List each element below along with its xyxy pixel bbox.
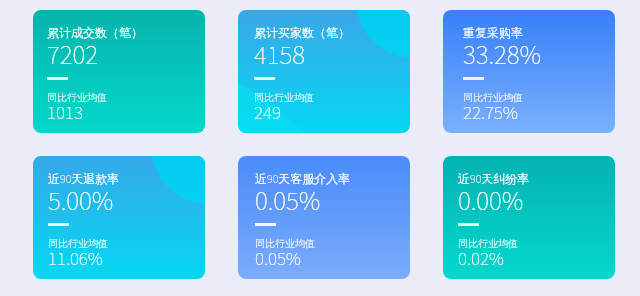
staticText: 0.00%: [458, 182, 524, 220]
staticText: 重复采购率: [463, 25, 523, 40]
staticText: 同比行业均值: [255, 237, 315, 250]
staticText: 近90天纠纷率: [458, 171, 530, 188]
staticText: 7202: [47, 36, 98, 74]
staticText: 33.28%: [463, 36, 542, 74]
staticText: 0.02%: [458, 246, 505, 273]
staticText: 11.06%: [48, 246, 103, 273]
staticText: 同比行业均值: [254, 91, 314, 104]
button[interactable]: 近90天退款率: [33, 156, 205, 279]
staticText: 累计买家数（笔）: [254, 25, 350, 40]
button[interactable]: 累计买家数（笔）: [238, 10, 410, 133]
staticText: 近90天客服介入率: [255, 171, 351, 188]
staticText: 22.75%: [463, 100, 518, 127]
button[interactable]: 近90天客服介入率: [238, 156, 410, 279]
button[interactable]: 累计成交数（笔）: [33, 10, 205, 133]
staticText: 0.05%: [255, 182, 321, 220]
staticText: 249: [254, 100, 281, 127]
staticText: 同比行业均值: [48, 237, 108, 250]
button[interactable]: 重复采购率: [443, 10, 615, 133]
staticText: 同比行业均值: [463, 91, 523, 104]
button[interactable]: 近90天纠纷率: [443, 156, 615, 279]
staticText: 同比行业均值: [47, 91, 107, 104]
staticText: 近90天退款率: [48, 171, 120, 188]
staticText: 5.00%: [48, 182, 114, 220]
staticText: 累计成交数（笔）: [47, 25, 143, 40]
staticText: 同比行业均值: [458, 237, 518, 250]
staticText: 1013: [47, 100, 83, 127]
staticText: 4158: [254, 36, 305, 74]
staticText: 0.05%: [255, 246, 302, 273]
